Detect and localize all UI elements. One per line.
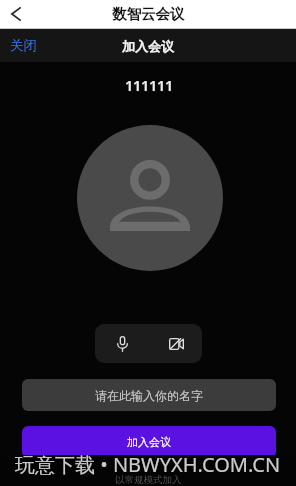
button[interactable]: Back xyxy=(4,2,28,26)
staticText: 玩意下载 • NBWYXH.COM.CN xyxy=(15,451,281,478)
staticText: 数智云会议 xyxy=(112,5,185,23)
button[interactable]: Camera off xyxy=(159,327,193,361)
staticText: 加入会议 xyxy=(127,435,171,449)
button[interactable]: 加入会议 xyxy=(22,426,276,458)
staticText: 111111 xyxy=(125,75,173,95)
staticText: 关闭 xyxy=(10,37,37,54)
button[interactable]: 关闭 xyxy=(10,37,37,54)
staticText: 请在此输入你的名字 xyxy=(95,388,203,403)
staticText: 以常规模式加入 xyxy=(115,474,182,486)
button[interactable]: 请在此输入你的名字 xyxy=(22,379,276,411)
button[interactable]: Microphone xyxy=(105,327,139,361)
staticText: 加入会议 xyxy=(122,38,174,54)
